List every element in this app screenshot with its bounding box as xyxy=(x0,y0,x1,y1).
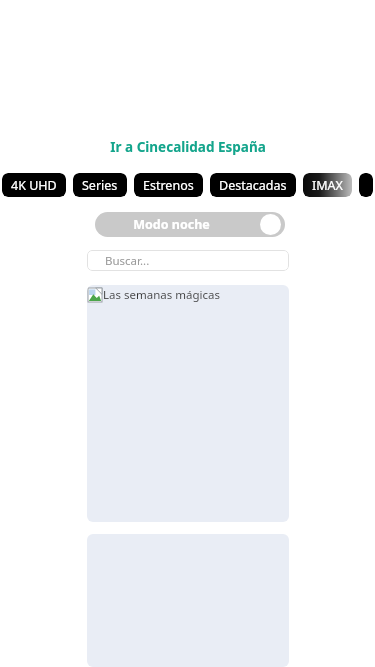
staticText: IMAX xyxy=(312,177,343,194)
button[interactable]: Ir a Cinecalidad España xyxy=(0,138,375,156)
button[interactable]: Series xyxy=(73,173,127,197)
staticText: Buscar... xyxy=(105,253,150,269)
staticText: Ir a Cinecalidad España xyxy=(110,138,266,156)
button[interactable]: Estrenos xyxy=(134,173,203,197)
staticText: Modo noche xyxy=(133,216,210,233)
button[interactable]: Modo noche xyxy=(95,212,285,237)
button[interactable]: Menú xyxy=(359,173,373,197)
button[interactable]: IMAX xyxy=(303,173,352,197)
staticText: Series xyxy=(82,177,118,194)
button[interactable]: 4K UHD xyxy=(2,173,66,197)
staticText: 4K UHD xyxy=(11,177,57,194)
staticText: Las semanas mágicas xyxy=(103,287,220,303)
button[interactable]: Destacadas xyxy=(210,173,296,197)
button[interactable]: Las semanas mágicas xyxy=(87,285,289,522)
staticText: Destacadas xyxy=(219,177,287,194)
staticText: Estrenos xyxy=(143,177,194,194)
button[interactable]: Buscar... xyxy=(87,250,289,271)
